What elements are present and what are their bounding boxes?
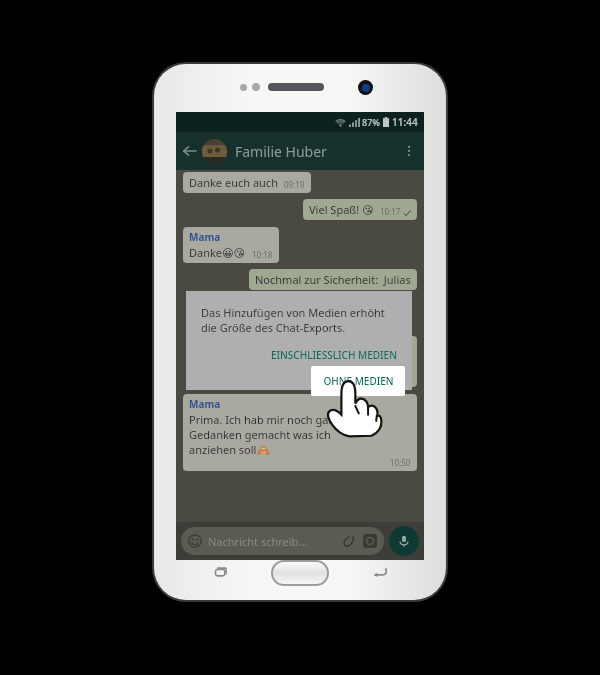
button[interactable]: Danke euch auch [183, 172, 311, 193]
staticText: Mama [189, 397, 221, 411]
staticText: 10:49 [380, 373, 401, 384]
staticText: 09:19 [284, 179, 305, 190]
staticText: 87% [362, 116, 380, 128]
button[interactable]: Das Hinzufügen von Medien erhöht [186, 291, 412, 390]
staticText: Das Hinzufügen von Medien erhöht [201, 305, 385, 320]
button[interactable]: Back [176, 138, 202, 164]
staticText: Familie Huber [235, 142, 327, 161]
button[interactable]: More options [396, 138, 422, 164]
button[interactable]: Ne, ich hab ein anderes Kleid [218, 336, 417, 387]
staticText: 10:17 [380, 206, 401, 217]
button[interactable]: Mama [183, 227, 279, 263]
staticText: 10:18 [252, 249, 273, 260]
button[interactable]: Viel Spaß! 😘 [303, 199, 417, 220]
button[interactable]: Mama [183, 394, 417, 471]
staticText: Danke😀😘 [189, 245, 246, 260]
staticText: Nachricht schreib… [208, 534, 308, 549]
other: Emoji [188, 534, 202, 548]
staticText: 10:50 [390, 457, 411, 468]
staticText: Danke euch auch [189, 175, 278, 190]
button[interactable]: Nochmal zur Sicherheit: Julias [249, 269, 417, 290]
staticText: Gedanken gemacht was ich [189, 427, 331, 442]
button[interactable]: OHNE MEDIEN [311, 366, 405, 396]
staticText: umsonst hätte 😊 [224, 369, 314, 384]
button[interactable]: Voice message [389, 526, 419, 556]
staticText: die Größe des Chat-Exports. [201, 320, 346, 335]
staticText: gekauft. Nicht, dass ich das [224, 354, 365, 369]
staticText: 11:44 [392, 115, 418, 129]
staticText: Prima. Ich hab mir noch gar keine [189, 412, 364, 427]
staticText: EINSCHLIESSLICH MEDIEN [271, 348, 397, 362]
staticText: Ne, ich hab ein anderes Kleid [224, 339, 374, 354]
staticText: OHNE MEDIEN [323, 374, 394, 388]
staticText: anziehen soll🙈 [189, 442, 271, 457]
staticText: Nochmal zur Sicherheit: Julias [255, 272, 411, 287]
staticText: Viel Spaß! 😘 [309, 202, 374, 217]
button[interactable]: EINSCHLIESSLICH MEDIEN [268, 346, 400, 364]
staticText: Mama [189, 230, 221, 244]
button[interactable]: Emoji [181, 527, 384, 555]
button[interactable]: Group photo [202, 139, 227, 164]
other: Attach [342, 534, 356, 548]
other: Camera [363, 534, 377, 548]
